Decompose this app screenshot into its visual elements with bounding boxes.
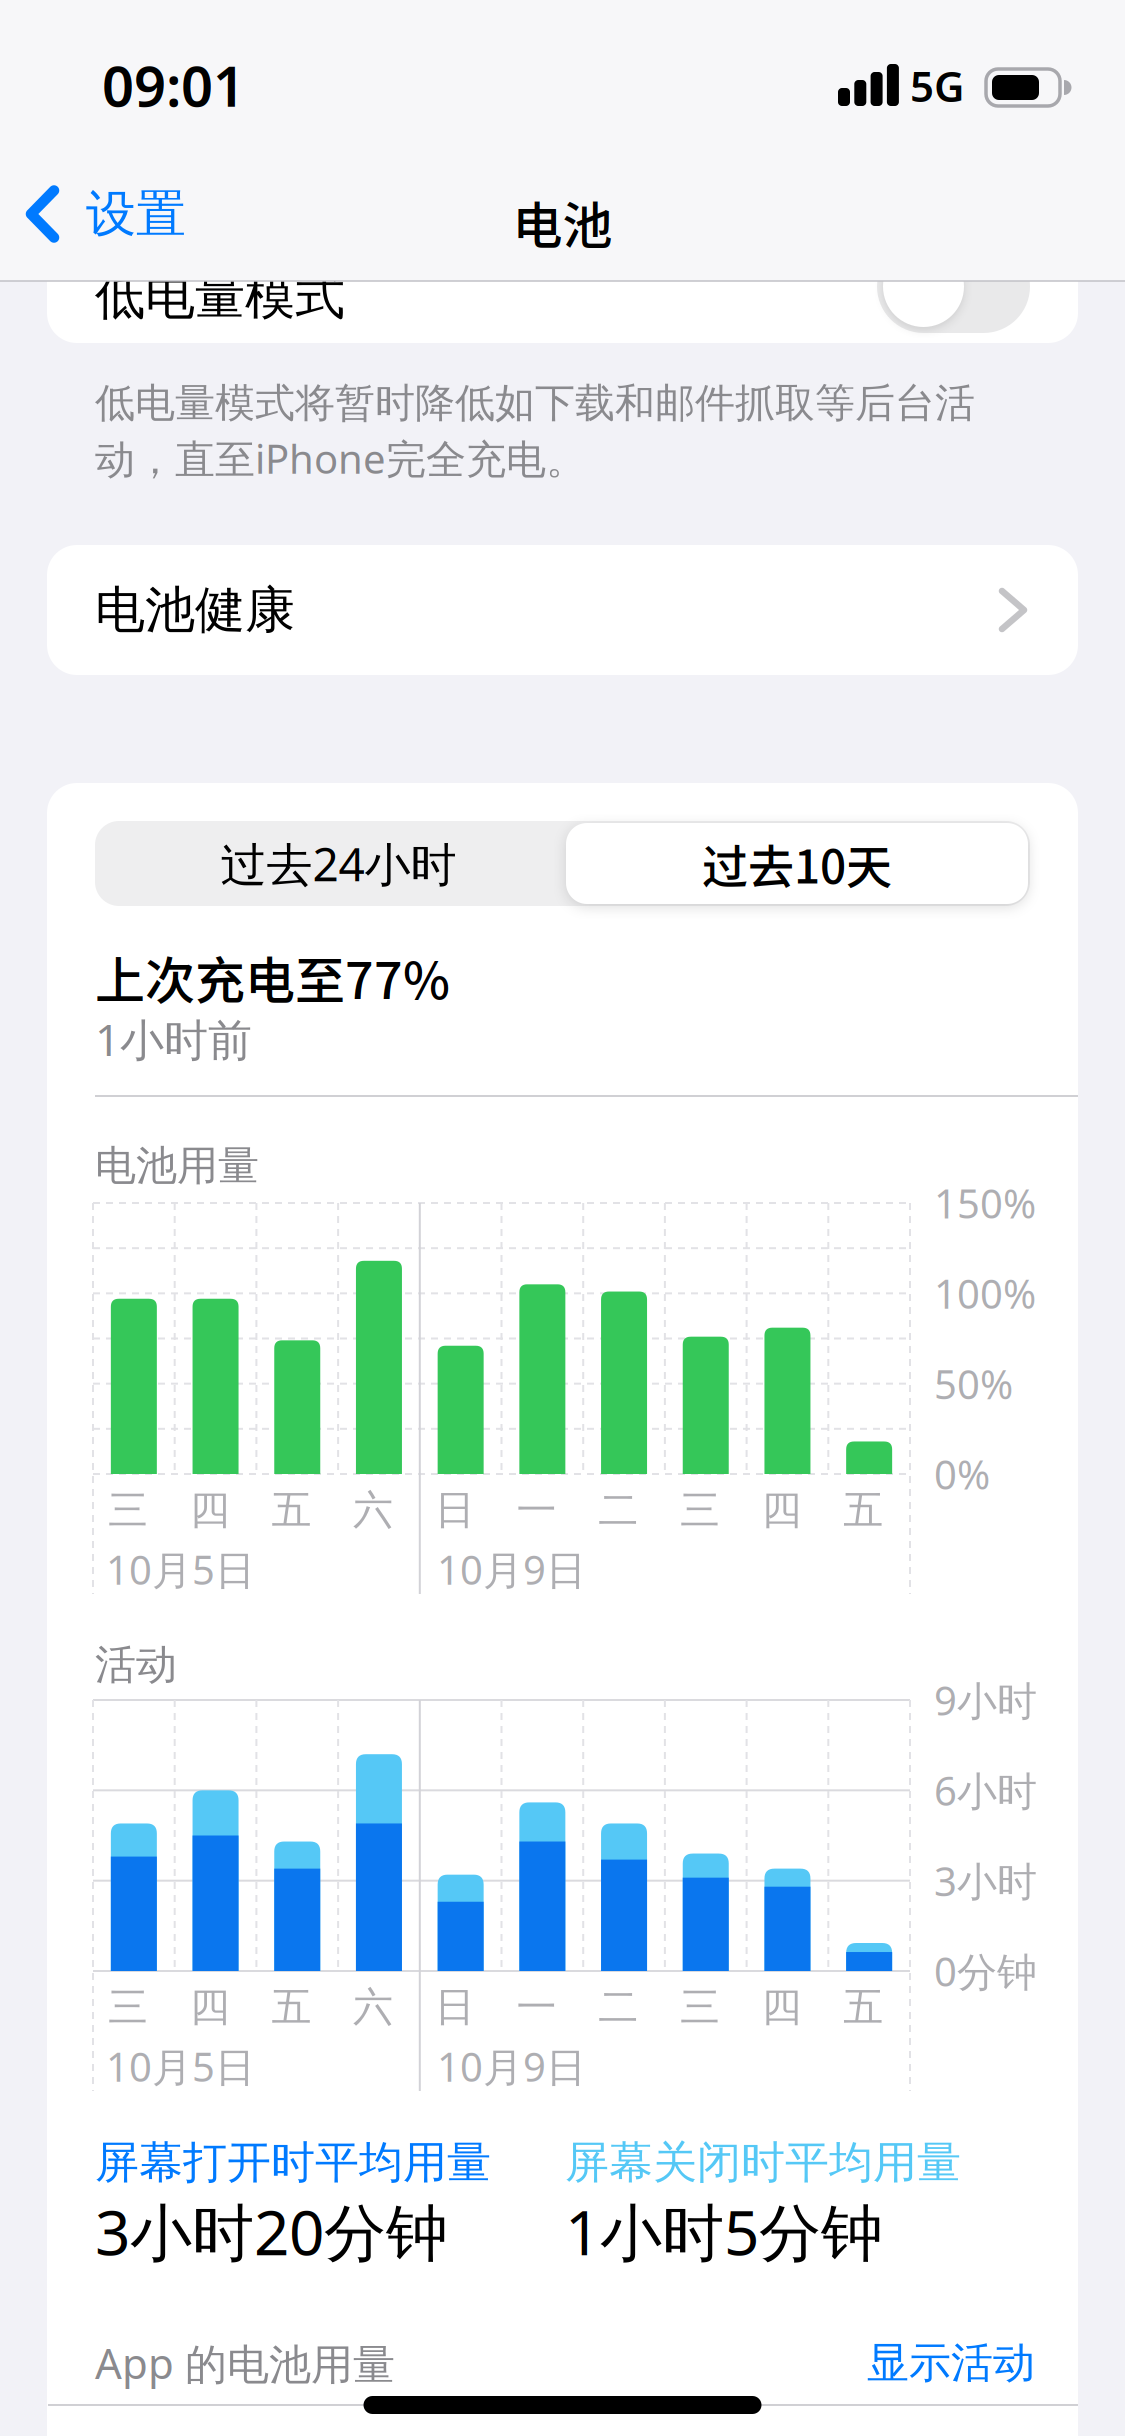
staticText: 一 <box>516 1485 556 1535</box>
staticText: 二 <box>598 1485 638 1535</box>
staticText: 六 <box>353 1982 393 2032</box>
staticText: 显示活动 <box>867 2336 1035 2389</box>
staticText: 动，直至iPhone完全充电。 <box>95 431 586 485</box>
staticText: 3小时20分钟 <box>95 2189 448 2273</box>
staticText: 五 <box>271 1982 311 2032</box>
staticText: 9小时 <box>934 1673 1037 1727</box>
button[interactable]: 过去10天 <box>566 823 1028 904</box>
staticText: 150% <box>934 1176 1036 1230</box>
staticText: 设置 <box>86 182 186 245</box>
staticText: 5G <box>910 57 964 114</box>
staticText: 10月9日 <box>437 2039 586 2093</box>
button[interactable]: 电池健康 <box>47 545 1078 675</box>
staticText: 一 <box>516 1982 556 2032</box>
staticText: 屏幕关闭时平均用量 <box>565 2135 961 2190</box>
staticText: 3小时 <box>934 1853 1037 1908</box>
button[interactable]: 过去24小时 <box>95 821 562 906</box>
staticText: 五 <box>843 1485 883 1535</box>
staticText: 电池用量 <box>95 1140 259 1192</box>
staticText: 五 <box>271 1485 311 1535</box>
staticText: 10月9日 <box>437 1542 586 1596</box>
staticText: 过去10天 <box>702 830 892 897</box>
staticText: 日 <box>435 1485 475 1535</box>
staticText: 6小时 <box>934 1763 1037 1818</box>
staticText: App 的电池用量 <box>95 2334 395 2391</box>
staticText: 二 <box>598 1982 638 2032</box>
button[interactable]: 显示活动 <box>635 2333 1035 2393</box>
staticText: 1小时前 <box>95 1009 252 1069</box>
staticText: 屏幕打开时平均用量 <box>95 2135 491 2190</box>
staticText: 五 <box>843 1982 883 2032</box>
button[interactable]: 返回设置 <box>24 184 186 244</box>
staticText: 活动 <box>95 1639 177 1691</box>
staticText: 09:01 <box>102 47 245 123</box>
staticText: 四 <box>762 1485 802 1535</box>
staticText: 低电量模式 <box>95 265 345 328</box>
staticText: 六 <box>353 1485 393 1535</box>
staticText: 0% <box>934 1447 990 1501</box>
staticText: 电池健康 <box>95 578 295 641</box>
staticText: 四 <box>762 1982 802 2032</box>
staticText: 三 <box>680 1982 720 2032</box>
staticText: 50% <box>934 1356 1013 1411</box>
staticText: 100% <box>934 1266 1036 1321</box>
staticText: 日 <box>435 1982 475 2032</box>
staticText: 低电量模式将暂时降低如下载和邮件抓取等后台活 <box>95 378 975 428</box>
staticText: 上次充电至77% <box>95 941 450 1013</box>
staticText: 0分钟 <box>934 1944 1037 1998</box>
staticText: 四 <box>190 1485 230 1535</box>
staticText: 10月5日 <box>106 1542 255 1596</box>
staticText: 电池 <box>512 186 612 258</box>
staticText: 1小时5分钟 <box>565 2189 883 2273</box>
staticText: 三 <box>108 1485 148 1535</box>
staticText: 10月5日 <box>106 2039 255 2093</box>
button[interactable]: 低电量模式 <box>877 240 1030 333</box>
staticText: 四 <box>190 1982 230 2032</box>
staticText: 三 <box>108 1982 148 2032</box>
staticText: 过去24小时 <box>220 832 456 895</box>
staticText: 三 <box>680 1485 720 1535</box>
